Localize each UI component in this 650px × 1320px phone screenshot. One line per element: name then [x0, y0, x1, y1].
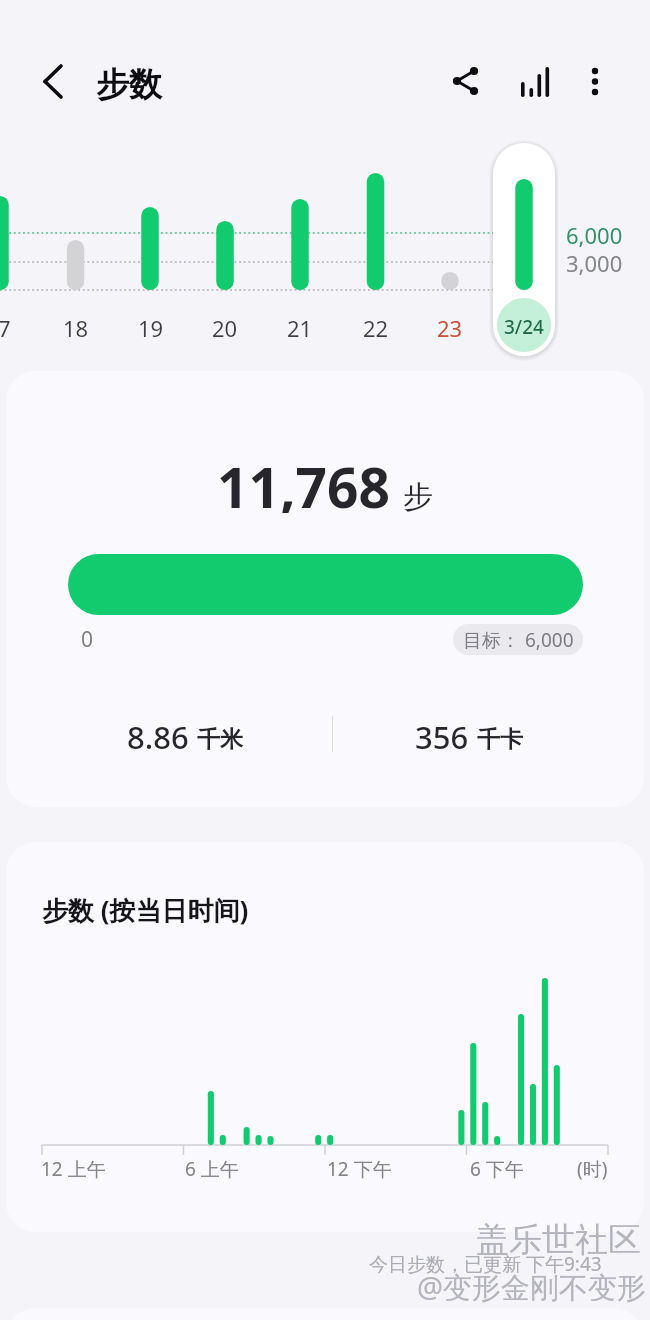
- button[interactable]: Goal 6,000: [453, 624, 583, 655]
- staticText: 步数: [96, 64, 162, 106]
- staticText: 12 下午: [327, 1156, 392, 1182]
- staticText: 7: [0, 313, 11, 343]
- staticText: 千米: [197, 725, 243, 754]
- staticText: 356: [415, 716, 469, 756]
- staticText: 18: [63, 313, 89, 343]
- staticText: 21: [287, 313, 313, 343]
- staticText: 6,000: [566, 220, 623, 250]
- staticText: (时): [577, 1156, 608, 1182]
- staticText: 19: [138, 313, 164, 343]
- staticText: 6 下午: [470, 1156, 524, 1182]
- staticText: 步数 (按当日时间): [42, 892, 249, 928]
- button[interactable]: Share: [438, 53, 494, 109]
- staticText: 20: [212, 313, 238, 343]
- staticText: 千卡: [477, 725, 523, 754]
- button[interactable]: Step progress: [68, 554, 583, 615]
- staticText: 23: [437, 313, 463, 343]
- staticText: 3/24: [504, 314, 544, 340]
- button[interactable]: 8.86: [45, 716, 325, 756]
- button[interactable]: More options: [567, 53, 623, 109]
- button[interactable]: Chart view: [506, 53, 562, 109]
- staticText: @变形金刚不变形: [417, 1267, 647, 1307]
- staticText: 盖乐世社区: [476, 1219, 641, 1261]
- staticText: 目标： 6,000: [463, 627, 574, 653]
- button[interactable]: 3/24: [493, 143, 555, 356]
- staticText: 3,000: [566, 248, 623, 278]
- staticText: 步: [403, 478, 433, 516]
- staticText: 0: [81, 625, 94, 654]
- staticText: 22: [363, 313, 389, 343]
- button[interactable]: 356: [329, 716, 609, 756]
- staticText: 12 上午: [41, 1156, 106, 1182]
- button[interactable]: Back: [29, 57, 77, 105]
- staticText: 8.86: [127, 716, 189, 756]
- staticText: 今日步数，已更新 下午9:43: [369, 1251, 602, 1277]
- staticText: 11,768: [217, 449, 390, 513]
- staticText: 6 上午: [185, 1156, 239, 1182]
